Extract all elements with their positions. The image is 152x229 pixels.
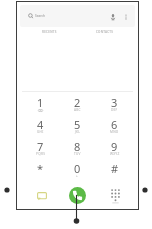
button[interactable]: 1: [22, 92, 59, 114]
button[interactable]: Call: [69, 187, 86, 204]
button[interactable]: 3: [96, 92, 133, 114]
staticText: 8: [74, 139, 81, 154]
staticText: 0: [74, 161, 81, 176]
button[interactable]: #: [96, 158, 133, 180]
button[interactable]: RECENTS: [22, 26, 77, 38]
staticText: TUV: [74, 152, 81, 156]
button[interactable]: 8: [59, 136, 96, 158]
staticText: PQRS: [36, 152, 46, 156]
button[interactable]: 0: [59, 158, 96, 180]
button[interactable]: 9: [96, 136, 133, 158]
staticText: 6: [111, 117, 118, 132]
staticText: WXYZ: [110, 152, 120, 156]
staticText: JKL: [75, 130, 81, 134]
staticText: ABC: [74, 108, 81, 112]
staticText: 5: [74, 117, 81, 132]
staticText: #: [111, 161, 119, 176]
button[interactable]: *: [22, 158, 59, 180]
button[interactable]: More options: [119, 10, 132, 23]
staticText: 9: [111, 139, 118, 154]
staticText: Search: [35, 14, 46, 18]
button[interactable]: 4: [22, 114, 59, 136]
staticText: 3: [111, 95, 118, 110]
staticText: *: [37, 161, 44, 176]
button[interactable]: 2: [59, 92, 96, 114]
button[interactable]: 5: [59, 114, 96, 136]
button[interactable]: CONTACTS: [77, 26, 133, 38]
staticText: 4: [37, 117, 44, 132]
button[interactable]: 7: [22, 136, 59, 158]
staticText: +: [76, 174, 79, 178]
button[interactable]: Message: [22, 182, 59, 209]
button[interactable]: Keypad: [96, 182, 133, 209]
staticText: CONTACTS: [96, 30, 114, 34]
staticText: 1: [37, 95, 44, 110]
button[interactable]: Voice search: [106, 10, 119, 23]
staticText: DEF: [111, 108, 118, 112]
button[interactable]: 6: [96, 114, 133, 136]
staticText: 7: [37, 139, 44, 154]
staticText: MNO: [110, 130, 119, 134]
staticText: GHI: [37, 130, 44, 134]
button[interactable]: Search: [20, 5, 135, 27]
staticText: RECENTS: [42, 30, 57, 34]
staticText: 2: [74, 95, 81, 110]
